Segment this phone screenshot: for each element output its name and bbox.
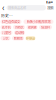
staticText: 蓝牙机 <box>1 25 10 29</box>
button[interactable]: 新款小白鞋厚底增 <box>23 19 53 24</box>
button[interactable]: 蓝牙机 <box>0 25 11 29</box>
staticText: ▮▲▬ <box>46 0 53 4</box>
staticText: ‹ <box>2 2 4 13</box>
staticText: 数据线 <box>13 36 22 40</box>
button[interactable]: 卫衣 <box>0 36 10 40</box>
staticText: 收纳盒 <box>27 25 36 29</box>
button[interactable]: Back <box>0 4 5 11</box>
button[interactable]: 搜索商品名称 <box>6 5 46 10</box>
button[interactable]: 红色连衣裙女 <box>0 19 21 24</box>
button[interactable]: 数据线 <box>12 36 24 40</box>
button[interactable]: 护肤品 <box>25 36 35 40</box>
staticText: 卫衣 <box>2 36 8 40</box>
button[interactable]: 防晒衣 <box>13 25 25 29</box>
button[interactable]: 儿童包 <box>0 30 12 35</box>
staticText: 防晒衣 <box>14 25 23 29</box>
staticText: 保温杯 <box>41 25 50 29</box>
staticText: 护肤品 <box>26 36 35 40</box>
button[interactable]: 运动鞋 <box>14 30 25 35</box>
staticText: 红色连衣裙女 <box>2 19 20 24</box>
button[interactable]: 收纳盒 <box>26 25 37 29</box>
staticText: 运动鞋 <box>15 30 24 35</box>
staticText: 儿童包 <box>2 30 11 35</box>
staticText: 历史搜索 <box>1 13 15 18</box>
button[interactable]: 搜索 <box>47 5 53 10</box>
staticText: 搜索 <box>47 5 53 10</box>
staticText: 新款小白鞋厚底增 <box>26 19 50 24</box>
staticText: 搜索商品名称 <box>8 5 26 10</box>
button[interactable]: 保温杯 <box>39 25 52 29</box>
